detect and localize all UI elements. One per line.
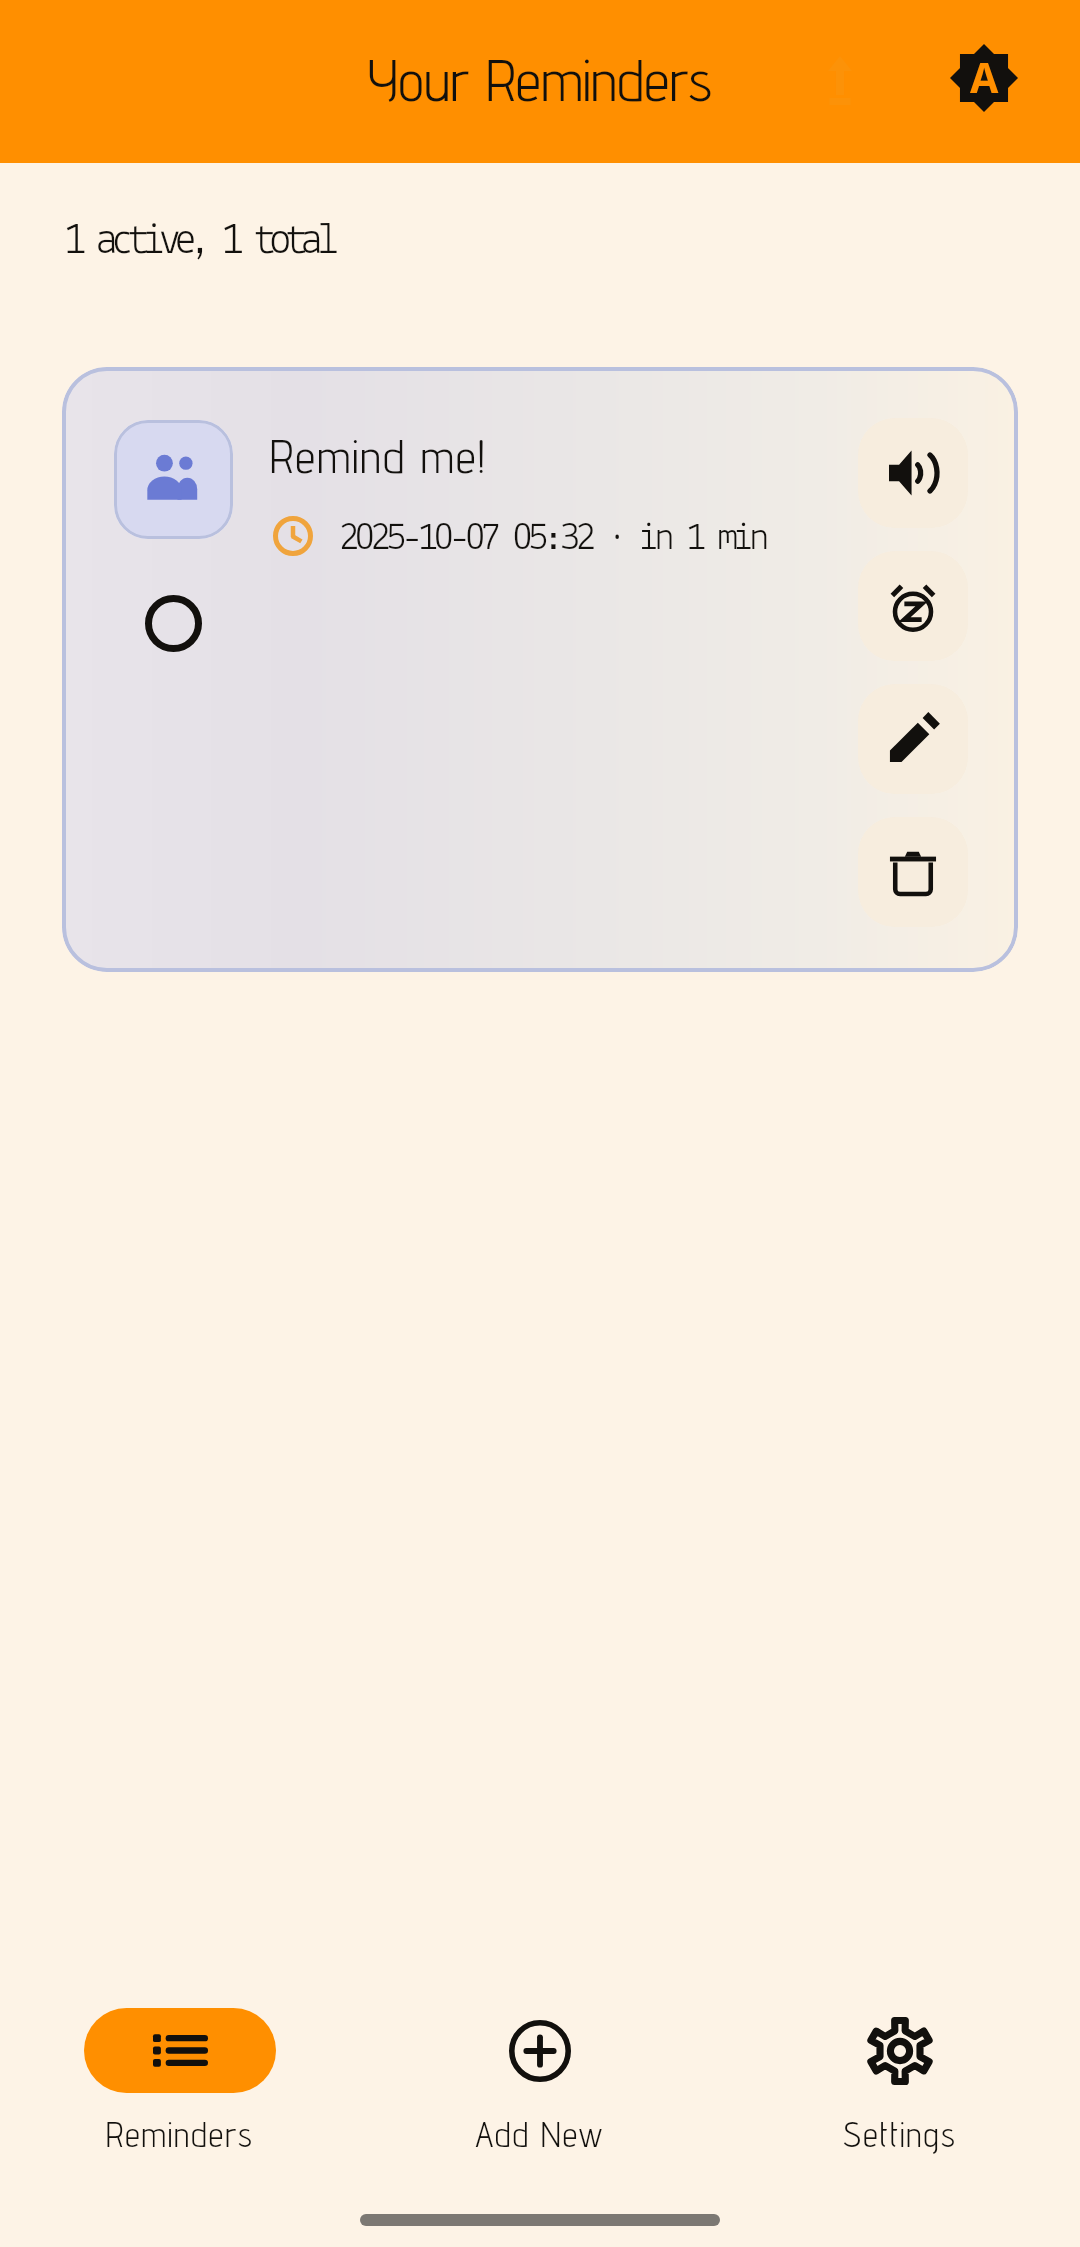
button[interactable]: Add New [430, 2000, 650, 2155]
button[interactable]: Text size [934, 28, 1034, 128]
button[interactable]: Edit [858, 684, 968, 794]
button[interactable]: Sound [858, 418, 968, 528]
staticText: Reminders [106, 2114, 254, 2155]
staticText: 2025-10-07 05:32 · in 1 min [339, 519, 766, 559]
button[interactable]: Settings [790, 2000, 1010, 2155]
staticText: A [970, 49, 999, 105]
staticText: 1 active, 1 total [64, 219, 332, 264]
staticText: Your Reminders [368, 45, 713, 114]
staticText: Remind me! [270, 429, 487, 484]
button[interactable]: Delete [858, 817, 968, 927]
button[interactable]: Mark complete [133, 583, 213, 663]
button[interactable]: Mark complete [62, 367, 1018, 972]
staticText: Settings [843, 2114, 957, 2155]
staticText: Add New [475, 2114, 605, 2155]
button[interactable]: Snooze [858, 551, 968, 661]
button[interactable]: Reminders [70, 2000, 290, 2155]
